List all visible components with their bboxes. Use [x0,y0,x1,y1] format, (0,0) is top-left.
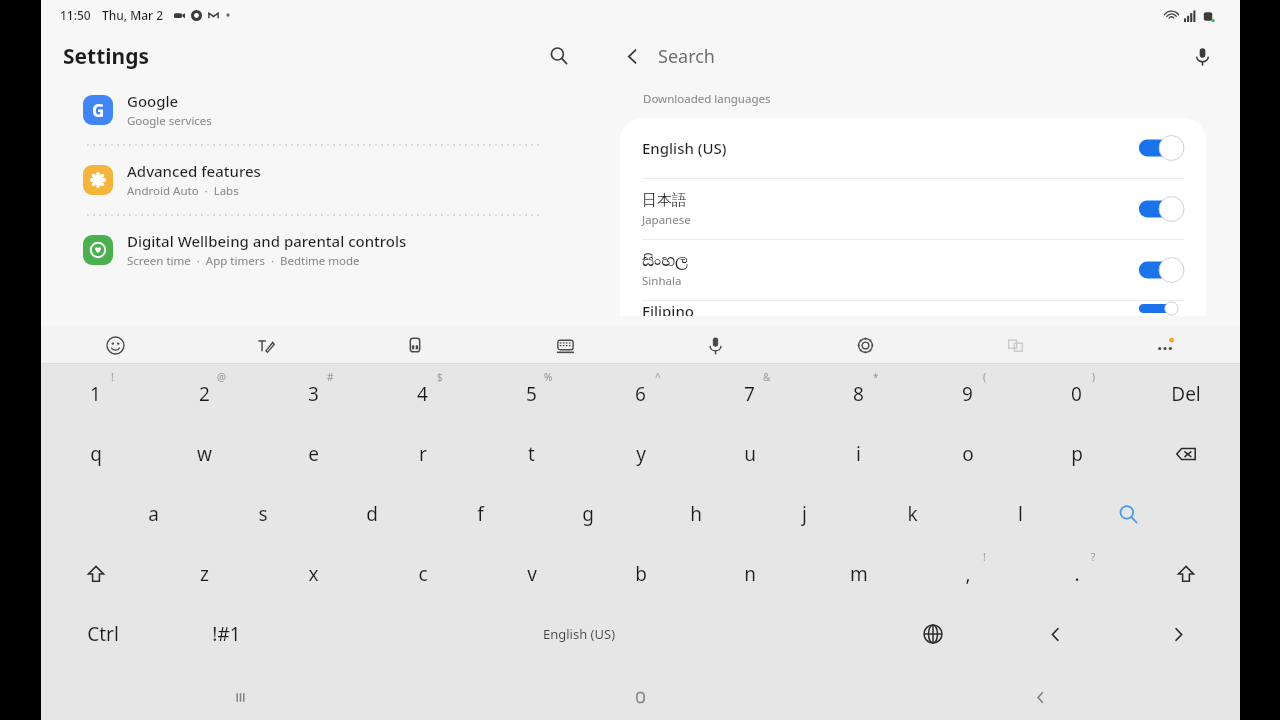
button[interactable]: z [150,544,259,604]
button[interactable]: Toggle Filipino [1136,301,1184,316]
staticText: Google [127,91,179,111]
button[interactable]: Clipboard [340,326,490,364]
button[interactable]: . [1022,544,1131,604]
staticText: G [92,99,105,122]
button[interactable]: search [1074,484,1182,544]
button[interactable]: backspace [1131,424,1240,484]
button[interactable]: x [259,544,368,604]
button[interactable]: 9 [913,364,1022,424]
button[interactable]: m [804,544,913,604]
staticText: Android Auto · Labs [127,183,239,199]
button[interactable]: 8 [804,364,913,424]
button[interactable]: Ctrl [41,604,165,664]
staticText: . [1074,561,1080,587]
button[interactable]: w [150,424,259,484]
button[interactable]: f [426,484,534,544]
button[interactable]: 日本語 [620,179,1206,239]
button[interactable]: G [41,82,601,138]
button[interactable]: u [695,424,804,484]
staticText: v [527,561,537,587]
button[interactable]: l [966,484,1074,544]
button[interactable]: Emoji [41,326,190,364]
staticText: Japanese [642,212,691,228]
button[interactable]: Previous [994,604,1117,664]
button[interactable]: b [586,544,695,604]
button[interactable]: 6 [586,364,695,424]
button[interactable]: Keyboard mode [490,326,640,364]
staticText: ^ [655,370,661,384]
button[interactable]: p [1022,424,1131,484]
button[interactable]: Digital Wellbeing and parental controls [41,222,601,278]
staticText: Settings [63,42,150,71]
staticText: l [1018,501,1023,527]
button[interactable]: c [368,544,477,604]
staticText: t [528,441,535,467]
button[interactable]: n [695,544,804,604]
button[interactable]: v [477,544,586,604]
button[interactable]: 0 [1022,364,1131,424]
staticText: 1 [90,381,101,407]
button[interactable]: Translate [940,326,1090,364]
button[interactable]: Back [840,674,1240,720]
button[interactable]: g [534,484,642,544]
button[interactable]: Settings [790,326,940,364]
button[interactable]: Change language [871,604,994,664]
button[interactable]: Toggle 日本語 [1136,195,1184,223]
button[interactable]: o [913,424,1022,484]
staticText: ( [983,370,986,384]
button[interactable]: Filipino [620,301,1206,316]
button[interactable]: Toggle සිංහල [1136,256,1184,284]
staticText: m [850,561,868,587]
staticText: k [907,501,918,527]
staticText: j [802,501,807,527]
button[interactable]: 2 [150,364,259,424]
staticText: ! [111,370,114,384]
button[interactable]: සිංහල [620,240,1206,300]
button[interactable]: Recents [41,674,440,720]
button[interactable]: h [642,484,750,544]
button[interactable]: Handwriting [190,326,340,364]
button[interactable]: y [586,424,695,484]
staticText: 6 [635,381,646,407]
button[interactable]: i [804,424,913,484]
button[interactable]: 7 [695,364,804,424]
button[interactable]: shift [1131,544,1240,604]
button[interactable]: q [41,424,150,484]
button[interactable]: , [913,544,1022,604]
staticText: ) [1092,370,1095,384]
staticText: 4 [417,381,428,407]
button[interactable]: a [99,484,208,544]
button[interactable]: Next [1117,604,1240,664]
staticText: e [308,441,319,467]
button[interactable]: j [750,484,858,544]
staticText: 8 [853,381,864,407]
staticText: 9 [962,381,973,407]
button[interactable]: r [368,424,477,484]
button[interactable]: English (US) [620,118,1206,178]
staticText: 11:50 [60,7,91,23]
button[interactable]: 3 [259,364,368,424]
button[interactable]: Del [1131,364,1240,424]
button[interactable]: e [259,424,368,484]
button[interactable]: t [477,424,586,484]
staticText: Google services [127,113,212,129]
button[interactable]: Voice search [1182,36,1222,76]
button[interactable]: Toggle English (US) [1136,134,1184,162]
button[interactable]: Search settings [539,36,579,76]
button[interactable]: More options [1090,326,1240,364]
button[interactable]: 4 [368,364,477,424]
button[interactable]: 1 [41,364,150,424]
button[interactable]: !#1 [165,604,288,664]
button[interactable]: Voice input [640,326,790,364]
button[interactable]: s [208,484,317,544]
button[interactable]: shift [41,544,150,604]
staticText: s [258,501,268,527]
staticText: & [763,370,771,384]
button[interactable]: Home [440,674,840,720]
button[interactable]: English (US) [288,604,871,664]
button[interactable]: d [317,484,426,544]
button[interactable]: k [858,484,966,544]
button[interactable]: 5 [477,364,586,424]
button[interactable]: Back [613,37,651,75]
button[interactable]: Advanced features [41,152,601,208]
